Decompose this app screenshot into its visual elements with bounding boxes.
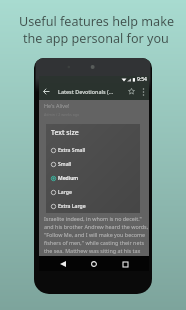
staticText: 9:54 (137, 76, 147, 83)
staticText: Extra Large (58, 203, 86, 210)
button[interactable]: Back (56, 257, 70, 271)
staticText: Useful features help make (19, 13, 174, 30)
staticText: Extra Small (58, 147, 86, 154)
button[interactable]: Large (46, 185, 140, 199)
staticText: Large (58, 189, 72, 196)
staticText: the sea. Matthew was sitting at his tax (44, 247, 141, 254)
button[interactable]: Small (46, 157, 140, 171)
staticText: He's Alive! (44, 102, 70, 109)
staticText: and his brother Andrew heard the words, (44, 223, 149, 230)
button[interactable]: Recent apps (118, 257, 132, 271)
staticText: "Follow Me, and I will make you become (44, 231, 146, 238)
button[interactable]: More options (138, 83, 148, 100)
staticText: Small (58, 161, 72, 168)
staticText: fishers of men," while casting their net… (44, 239, 149, 246)
staticText: Israelite indeed, in whom is no deceit."… (44, 215, 149, 222)
staticText: Admin / 2 weeks ago (44, 112, 80, 117)
button[interactable]: Back (39, 83, 53, 100)
button[interactable]: Home (87, 257, 101, 271)
staticText: Text size (51, 128, 79, 138)
button[interactable]: Extra Small (46, 143, 140, 157)
button[interactable]: Extra Large (46, 199, 140, 213)
staticText: Latest Devotionals (... (58, 88, 114, 95)
staticText: the app personal for you (23, 30, 169, 47)
staticText: Medium (58, 175, 79, 182)
button[interactable]: Favorite (125, 83, 138, 100)
button[interactable]: Medium (46, 171, 140, 185)
